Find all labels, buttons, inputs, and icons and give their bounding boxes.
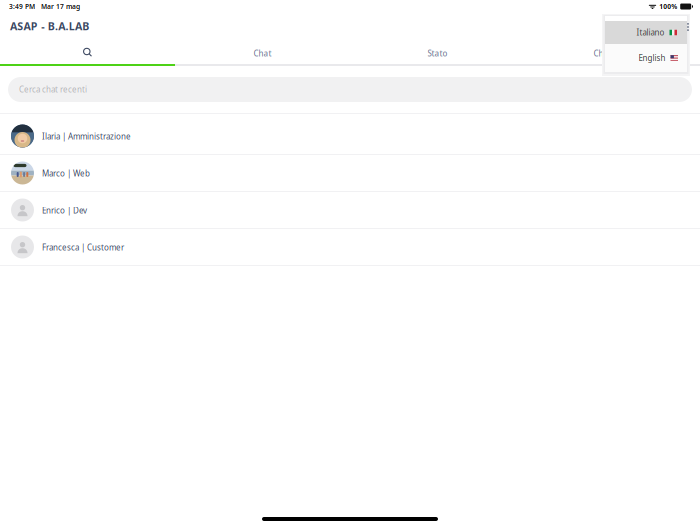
staticText: 3:49 PM Mar 17 mag — [9, 2, 80, 11]
button[interactable]: Stato — [350, 39, 525, 64]
staticText: Italiano — [636, 27, 664, 38]
staticText: Stato — [427, 48, 447, 59]
staticText: Chat — [253, 48, 271, 59]
button[interactable]: Francesca | Customer — [0, 229, 700, 266]
button[interactable]: Italiano — [605, 21, 687, 44]
staticText: ASAP - B.A.LAB — [10, 19, 89, 33]
button[interactable]: Marco | Web — [0, 155, 700, 192]
staticText: 100% — [659, 2, 677, 11]
button[interactable]: Ilaria | Amministrazione — [0, 118, 700, 155]
staticText: Chiamate — [593, 48, 631, 59]
button[interactable]: Chiamate — [525, 39, 700, 64]
button[interactable]: English — [605, 44, 687, 72]
staticText: Marco | Web — [42, 168, 90, 179]
button[interactable]: Altre opzioni — [685, 20, 691, 34]
button[interactable]: Cerca — [0, 39, 175, 64]
button[interactable]: Chat — [175, 39, 350, 64]
staticText: Ilaria | Amministrazione — [42, 131, 131, 142]
staticText: Enrico | Dev — [42, 205, 87, 216]
staticText: Francesca | Customer — [42, 242, 124, 253]
staticText: Cerca chat recenti — [19, 84, 87, 95]
button[interactable]: Enrico | Dev — [0, 192, 700, 229]
staticText: English — [638, 53, 665, 63]
